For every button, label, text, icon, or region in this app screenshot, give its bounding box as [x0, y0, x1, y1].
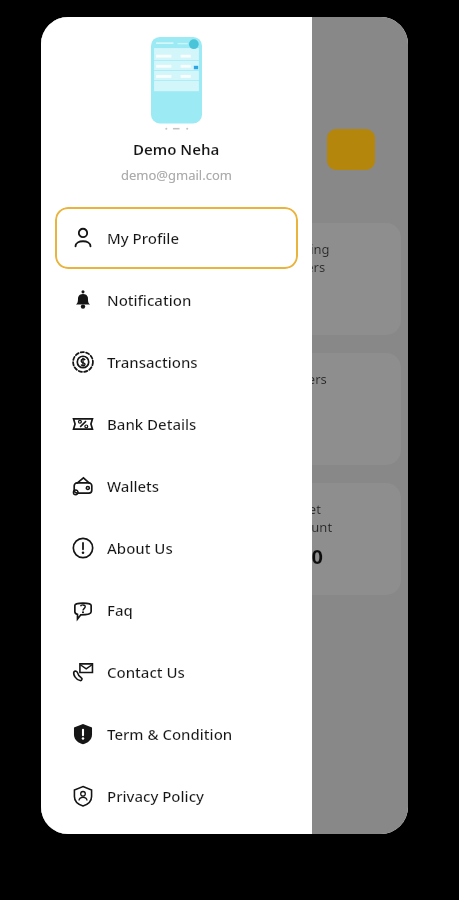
staticText: Privacy Policy [107, 786, 204, 806]
staticText: 9.00 [283, 543, 323, 570]
button[interactable]: My Profile [55, 207, 298, 269]
staticText: Waiting Orders [283, 240, 330, 276]
staticText: Bank Details [107, 414, 197, 434]
button[interactable]: Privacy Policy [41, 765, 312, 827]
button[interactable]: Bank Details [41, 393, 312, 455]
button[interactable]: Faq [41, 579, 312, 641]
staticText: Wallets [107, 476, 160, 496]
staticText: Wallet Amount [283, 500, 333, 536]
staticText: Faq [107, 600, 133, 620]
button[interactable]: Contact Us [41, 641, 312, 703]
staticText: demo@gmail.com [121, 166, 232, 184]
button[interactable]: Wallets [41, 455, 312, 517]
staticText: About Us [107, 538, 173, 558]
staticText: Notification [107, 290, 192, 310]
button[interactable]: Term & Condition [41, 703, 312, 765]
staticText: Demo Neha [133, 139, 220, 159]
button[interactable]: About Us [41, 517, 312, 579]
button[interactable]: Transactions [41, 331, 312, 393]
staticText: Contact Us [107, 662, 185, 682]
staticText: My Profile [107, 228, 180, 248]
staticText: Transactions [107, 352, 198, 372]
staticText: Term & Condition [107, 724, 233, 744]
button[interactable]: Notification [41, 269, 312, 331]
other: Action [327, 129, 375, 170]
staticText: Drivers [283, 370, 327, 388]
